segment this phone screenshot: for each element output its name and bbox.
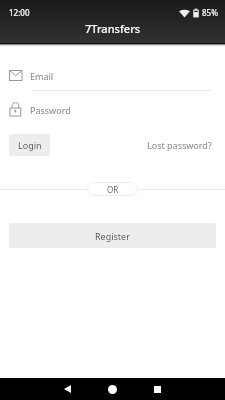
staticText: Password — [30, 104, 71, 116]
button[interactable]: Home — [90, 378, 135, 400]
staticText: Register — [95, 230, 130, 242]
staticText: 7Transfers — [85, 21, 141, 36]
button[interactable]: Lost password? — [147, 139, 216, 151]
staticText: Email — [30, 70, 54, 82]
staticText: 12:00 — [9, 7, 30, 18]
button[interactable]: Back — [45, 378, 90, 400]
button[interactable]: Recents — [135, 378, 180, 400]
button[interactable]: Register — [9, 223, 216, 248]
button[interactable]: Login — [9, 134, 50, 156]
staticText: 85% — [202, 7, 218, 18]
staticText: Lost password? — [147, 139, 212, 151]
button[interactable]: OR — [87, 182, 138, 196]
staticText: OR — [107, 184, 119, 195]
staticText: Login — [18, 139, 42, 151]
